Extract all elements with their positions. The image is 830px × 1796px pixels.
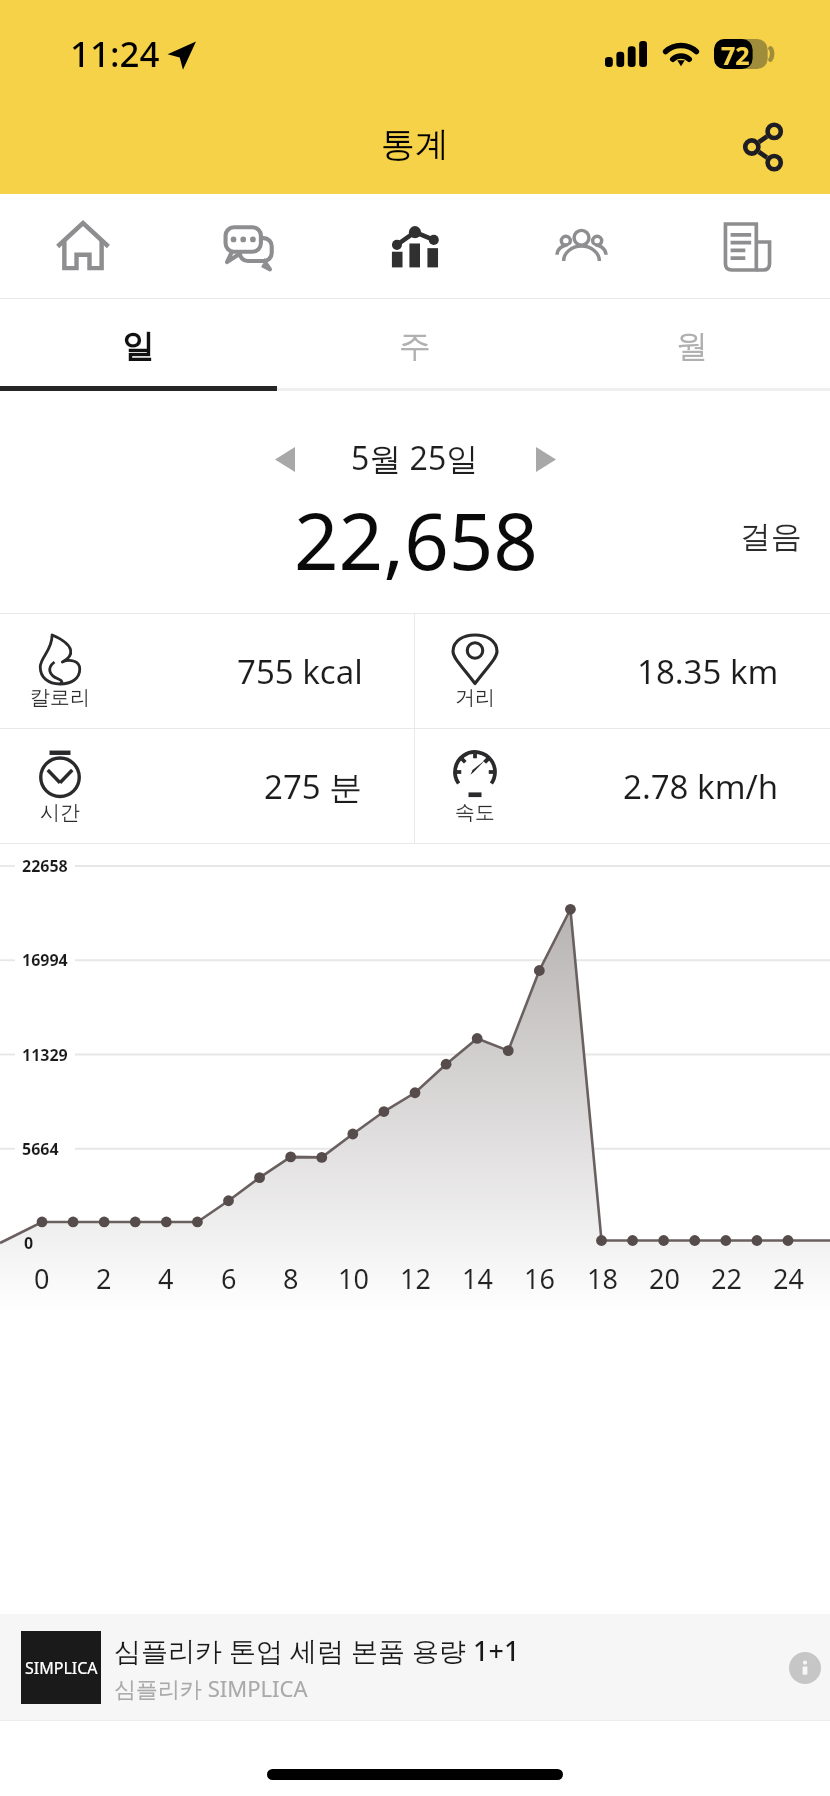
- staticText: 14: [462, 1260, 493, 1297]
- button[interactable]: 칼로리: [0, 614, 414, 728]
- staticText: 2: [96, 1260, 112, 1297]
- button[interactable]: Previous day: [255, 429, 315, 489]
- staticText: 72: [721, 38, 750, 68]
- button[interactable]: Next day: [516, 429, 576, 489]
- staticText: 4: [158, 1260, 174, 1297]
- staticText: 755 kcal: [237, 649, 363, 694]
- staticText: 18.35 km: [637, 649, 779, 694]
- staticText: 속도: [455, 800, 495, 825]
- staticText: 12: [400, 1260, 431, 1297]
- staticText: 걸음: [740, 517, 802, 556]
- staticText: 10: [338, 1260, 369, 1297]
- staticText: 16: [524, 1260, 555, 1297]
- button[interactable]: SIMPLICA: [0, 1614, 830, 1721]
- staticText: 심플리카 SIMPLICA: [114, 1673, 308, 1703]
- button[interactable]: 거리: [415, 614, 830, 728]
- staticText: 심플리카 톤업 세럼 본품 용량 1+1: [114, 1632, 520, 1669]
- staticText: 일: [122, 326, 154, 366]
- button[interactable]: Friends: [498, 194, 664, 299]
- button[interactable]: News: [664, 194, 830, 299]
- staticText: 24: [773, 1260, 804, 1297]
- staticText: 18: [587, 1260, 618, 1297]
- button[interactable]: 주: [276, 299, 553, 391]
- staticText: 11:24: [70, 30, 160, 78]
- staticText: SIMPLICA: [25, 1657, 98, 1679]
- staticText: 5664: [22, 1138, 59, 1160]
- button[interactable]: Ad info: [789, 1652, 821, 1684]
- button[interactable]: Share: [735, 119, 791, 175]
- staticText: 8: [283, 1260, 299, 1297]
- staticText: 22: [711, 1260, 742, 1297]
- staticText: 6: [221, 1260, 237, 1297]
- staticText: 0: [24, 1232, 34, 1254]
- staticText: 거리: [455, 685, 495, 710]
- button[interactable]: Home: [0, 194, 166, 299]
- staticText: 275 분: [264, 764, 363, 809]
- staticText: 월: [676, 326, 708, 366]
- staticText: 주: [399, 326, 431, 366]
- staticText: 22658: [22, 855, 68, 877]
- staticText: 16994: [22, 949, 68, 971]
- staticText: 시간: [40, 800, 80, 825]
- button[interactable]: 월: [553, 299, 830, 391]
- button[interactable]: 시간: [0, 729, 414, 843]
- button[interactable]: 일: [0, 299, 276, 391]
- staticText: 11329: [22, 1044, 68, 1066]
- staticText: 22,658: [294, 487, 538, 593]
- staticText: 20: [649, 1260, 680, 1297]
- button[interactable]: Statistics: [332, 194, 498, 299]
- staticText: 칼로리: [30, 685, 90, 710]
- staticText: 0: [34, 1260, 50, 1297]
- staticText: 통계: [381, 123, 449, 166]
- button[interactable]: 속도: [415, 729, 830, 843]
- button[interactable]: Chat: [166, 194, 332, 299]
- staticText: 2.78 km/h: [623, 764, 779, 809]
- staticText: 5월 25일: [351, 436, 479, 480]
